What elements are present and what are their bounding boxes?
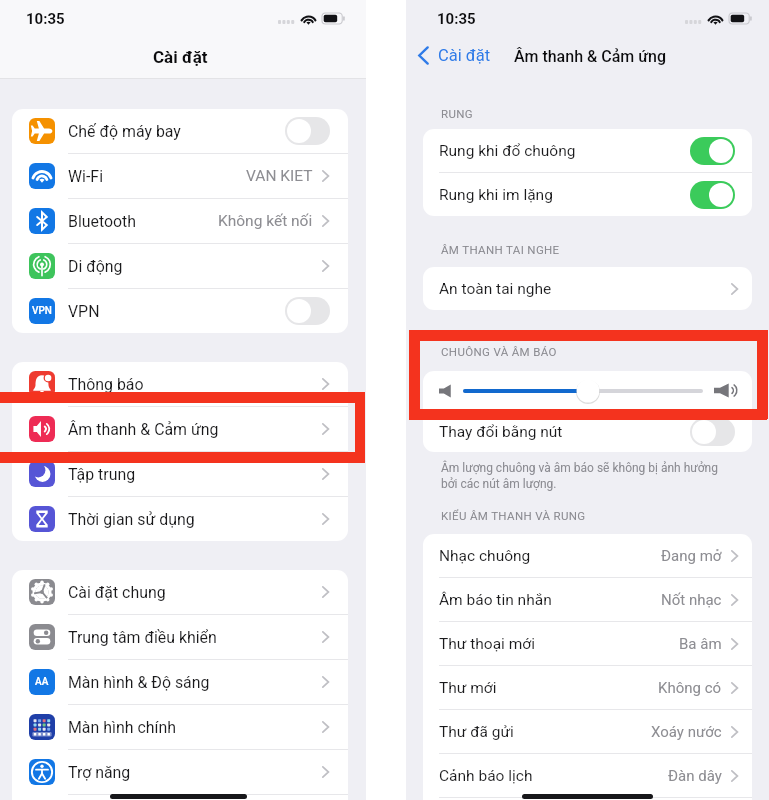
staticText: RUNG <box>441 107 473 120</box>
staticText: Thời gian sử dụng <box>68 510 195 529</box>
staticText: Xoáy nước <box>651 723 722 741</box>
button[interactable]: Chế độ máy bay <box>12 109 348 153</box>
staticText: Âm báo tin nhắn <box>439 591 552 609</box>
button[interactable]: Trung tâm điều khiển <box>12 615 348 659</box>
staticText: VAN KIET <box>246 167 313 185</box>
staticText: Thư đã gửi <box>439 723 514 741</box>
staticText: Trợ năng <box>68 763 131 782</box>
staticText: Nốt nhạc <box>661 591 722 609</box>
button[interactable]: Thư đã gửi <box>423 710 752 753</box>
staticText: KIỂU ÂM THANH VÀ RUNG <box>441 509 586 522</box>
staticText: VPN <box>68 302 100 321</box>
staticText: Thư mới <box>439 679 497 697</box>
staticText: Cài đặt chung <box>68 583 166 602</box>
button[interactable]: Wi-Fi <box>12 154 348 198</box>
staticText: Không có <box>658 679 722 697</box>
staticText: 10:35 <box>26 10 65 28</box>
button[interactable]: Trợ năng <box>12 750 348 794</box>
staticText: Wi-Fi <box>68 167 104 186</box>
button[interactable]: Back to Cài đặt <box>418 46 491 65</box>
staticText: Đang mở <box>661 547 722 565</box>
staticText: Âm lượng chuông và âm báo sẽ không bị ản… <box>441 461 718 475</box>
staticText: Rung khi im lặng <box>439 186 553 204</box>
button[interactable]: Thư thoại mới <box>423 622 752 665</box>
button[interactable]: Thông báo <box>12 362 348 406</box>
button[interactable]: Bluetooth <box>12 199 348 243</box>
staticText: Màn hình chính <box>68 718 176 737</box>
button[interactable]: Thay đổi bằng nút <box>423 411 752 452</box>
staticText: Di động <box>68 257 123 276</box>
button[interactable]: Âm báo tin nhắn <box>423 578 752 621</box>
button[interactable]: Cảnh báo nhắc nhở <box>423 798 752 800</box>
staticText: AA <box>35 676 49 688</box>
button[interactable]: Tập trung <box>12 452 348 496</box>
staticText: Đàn dây <box>668 767 722 785</box>
button[interactable]: Màn hình chính <box>12 705 348 749</box>
staticText: Cảnh báo lịch <box>439 767 533 785</box>
staticText: Thông báo <box>68 375 144 394</box>
staticText: Không kết nối <box>218 212 313 230</box>
button[interactable]: Toggle off <box>690 418 735 446</box>
staticText: Màn hình & Độ sáng <box>68 673 210 692</box>
button[interactable]: VPN <box>12 289 348 333</box>
button[interactable]: Toggle off <box>285 117 330 145</box>
staticText: Cài đặt <box>438 46 491 65</box>
staticText: Rung khi đổ chuông <box>439 142 576 160</box>
staticText: Thư thoại mới <box>439 635 535 653</box>
staticText: ÂM THANH TAI NGHE <box>441 243 560 256</box>
button[interactable]: Rung khi im lặng <box>423 173 752 216</box>
button[interactable]: Toggle off <box>285 297 330 325</box>
button[interactable]: Ringer volume <box>423 371 752 410</box>
staticText: An toàn tai nghe <box>439 280 552 298</box>
button[interactable]: Âm thanh & Cảm ứng <box>12 407 348 451</box>
button[interactable]: Toggle on <box>690 181 735 209</box>
button[interactable]: Hình nền <box>12 795 348 800</box>
staticText: Chế độ máy bay <box>68 122 181 141</box>
button[interactable]: Toggle on <box>690 137 735 165</box>
staticText: Bluetooth <box>68 212 137 231</box>
staticText: Âm thanh & Cảm ứng <box>514 47 666 66</box>
staticText: Cài đặt <box>153 47 208 67</box>
button[interactable]: Thời gian sử dụng <box>12 497 348 541</box>
staticText: VPN <box>32 305 52 317</box>
button[interactable]: Cài đặt chung <box>12 570 348 614</box>
staticText: Âm thanh & Cảm ứng <box>68 420 219 439</box>
staticText: Thay đổi bằng nút <box>439 423 563 441</box>
button[interactable]: An toàn tai nghe <box>423 267 752 310</box>
staticText: Trung tâm điều khiển <box>68 628 217 647</box>
button[interactable]: Di động <box>12 244 348 288</box>
staticText: Nhạc chuông <box>439 547 531 565</box>
button[interactable]: Rung khi đổ chuông <box>423 129 752 172</box>
staticText: Ba âm <box>679 635 722 653</box>
staticText: Tập trung <box>68 465 136 484</box>
staticText: 10:35 <box>437 10 476 28</box>
button[interactable]: Nhạc chuông <box>423 534 752 577</box>
staticText: CHUÔNG VÀ ÂM BÁO <box>441 345 557 358</box>
button[interactable]: Thư mới <box>423 666 752 709</box>
button[interactable]: Cảnh báo lịch <box>423 754 752 797</box>
button[interactable]: AA <box>12 660 348 704</box>
staticText: bởi các nút âm lượng. <box>441 477 557 491</box>
